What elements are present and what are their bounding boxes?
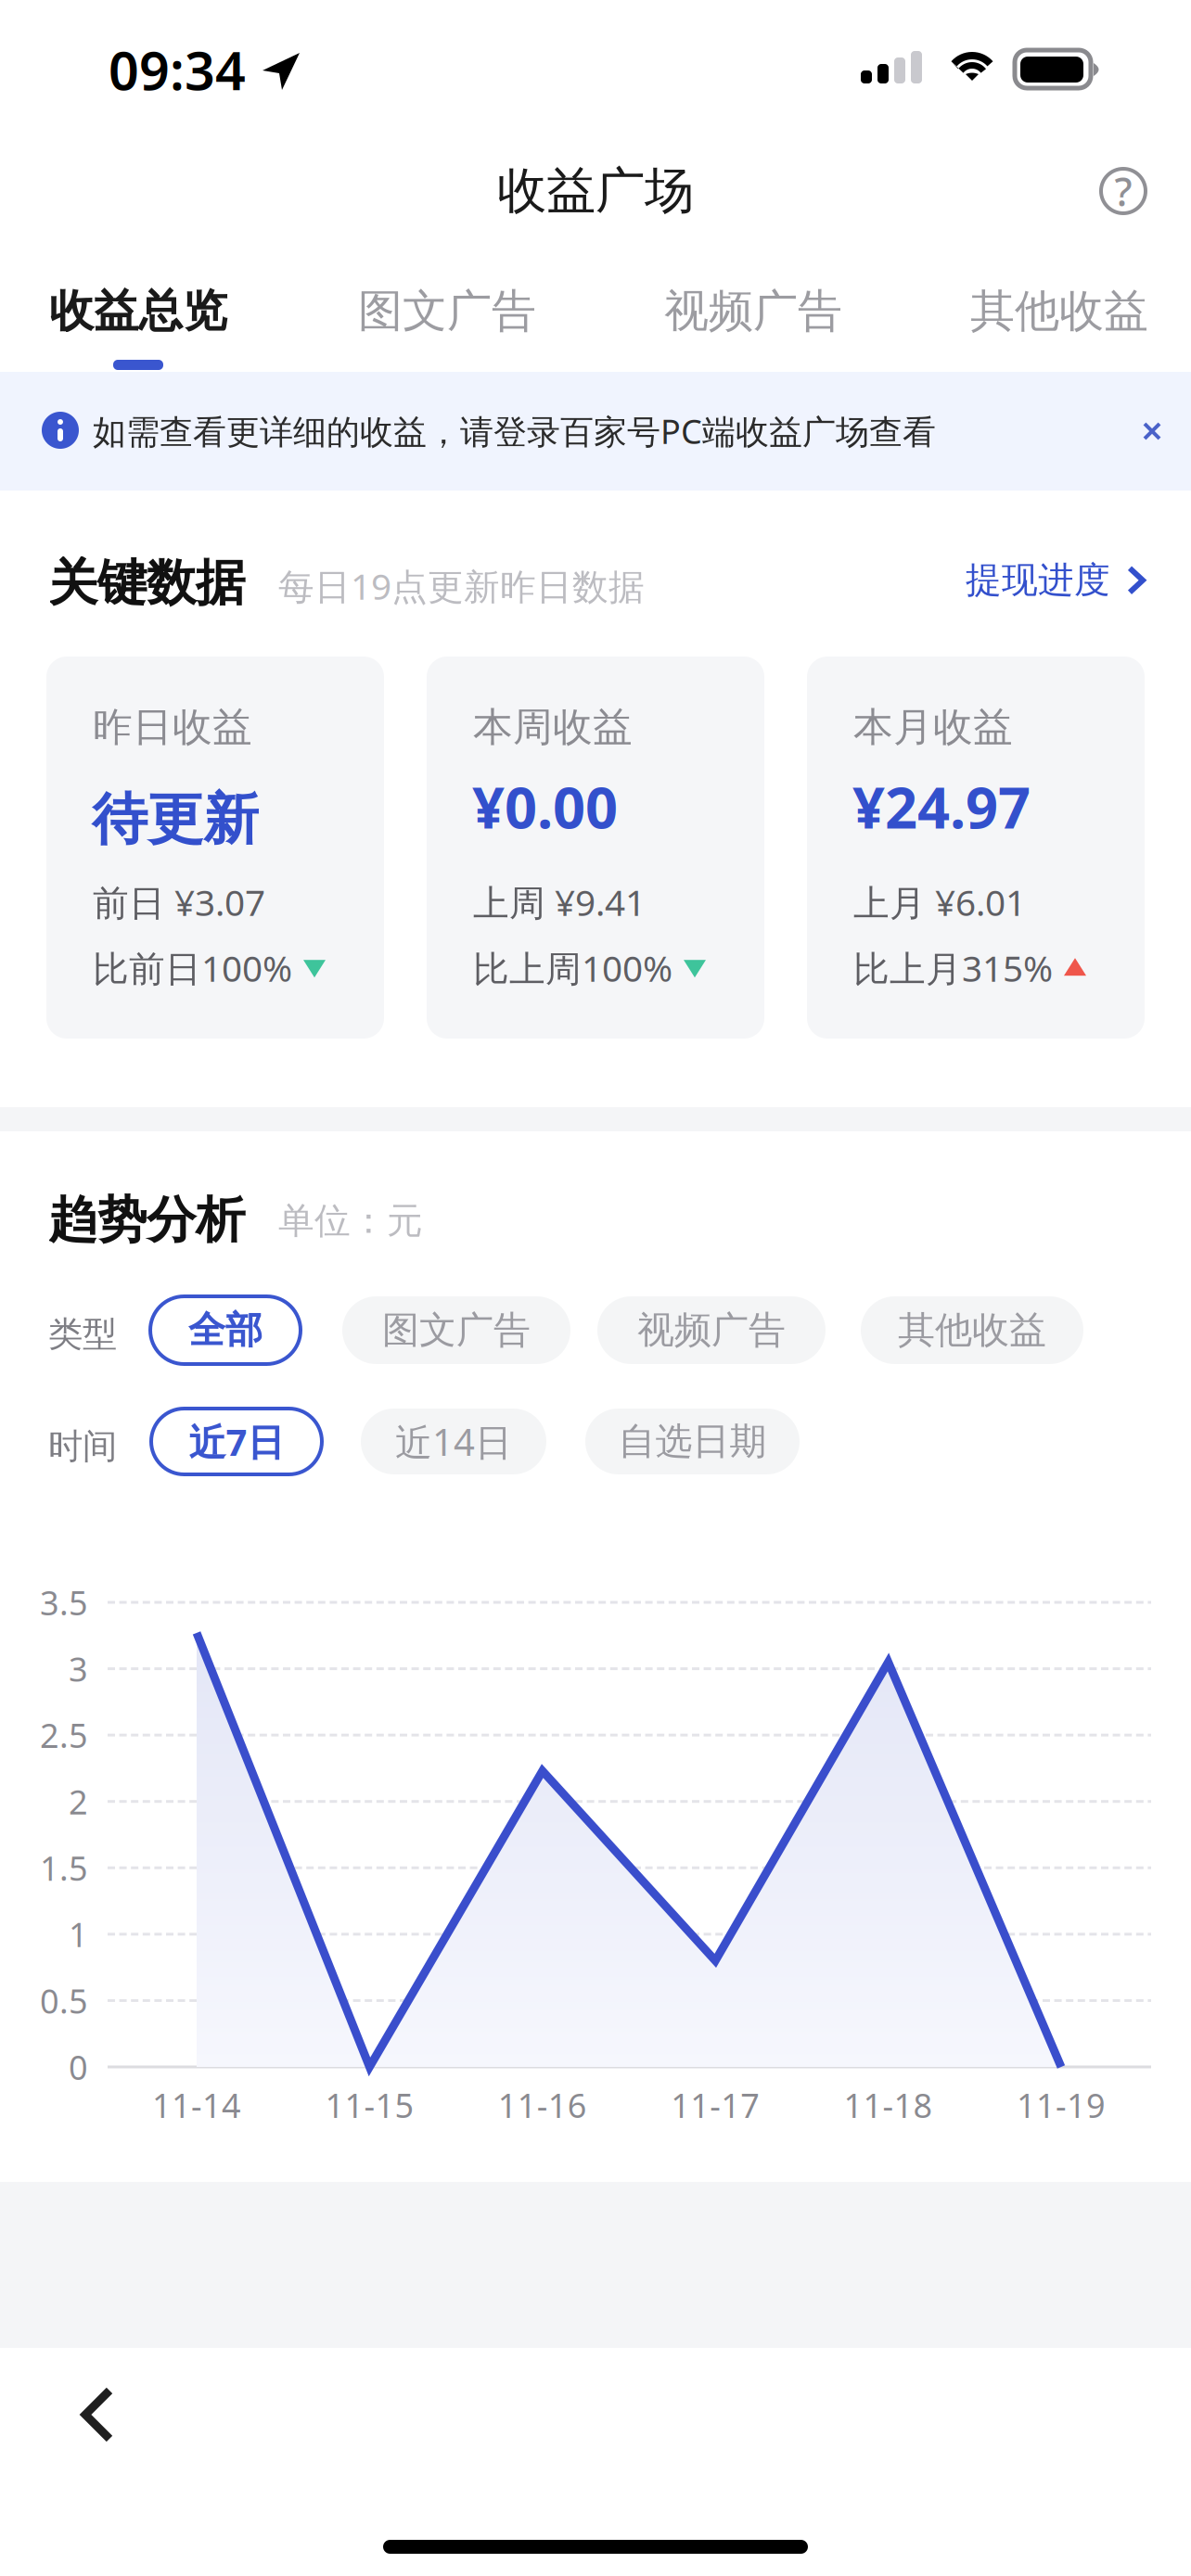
staticText: 类型 <box>48 1313 117 1356</box>
staticText: 比上月315% <box>853 944 1053 992</box>
button[interactable]: 近7日 <box>151 1409 322 1474</box>
staticText: 0 <box>69 2045 88 2089</box>
staticText: 单位：元 <box>278 1199 423 1243</box>
button[interactable]: Back <box>41 2356 154 2473</box>
button[interactable]: 其他收益 <box>861 1296 1083 1364</box>
staticText: 其他收益 <box>898 1307 1046 1353</box>
staticText: 3 <box>69 1647 88 1691</box>
staticText: 提现进度 <box>966 558 1110 602</box>
staticText: 昨日收益 <box>93 703 252 751</box>
staticText: 09:34 <box>109 34 246 105</box>
staticText: 11-19 <box>1017 2083 1106 2127</box>
staticText: 11-16 <box>498 2083 587 2127</box>
staticText: 0.5 <box>40 1978 88 2023</box>
staticText: 本周收益 <box>473 703 633 751</box>
button[interactable]: 图文广告 <box>358 274 553 369</box>
staticText: 其他收益 <box>970 284 1148 338</box>
staticText: 3.5 <box>40 1580 88 1625</box>
button[interactable]: 提现进度 <box>956 545 1156 615</box>
staticText: 11-15 <box>325 2083 414 2127</box>
staticText: ¥0.00 <box>472 769 618 844</box>
staticText: 本月收益 <box>853 703 1013 751</box>
staticText: 时间 <box>48 1425 117 1468</box>
button[interactable]: 全部 <box>150 1296 301 1364</box>
staticText: 近14日 <box>395 1417 512 1466</box>
staticText: 2 <box>69 1779 88 1824</box>
staticText: 图文广告 <box>358 284 536 338</box>
staticText: ? <box>1114 165 1132 217</box>
staticText: ¥24.97 <box>852 769 1031 844</box>
button[interactable]: 近14日 <box>361 1409 546 1474</box>
staticText: 比前日100% <box>93 944 292 992</box>
button[interactable]: 收益总览 <box>49 274 244 369</box>
staticText: 自选日期 <box>618 1419 767 1464</box>
staticText: 11-18 <box>844 2083 933 2127</box>
button[interactable]: 其他收益 <box>970 274 1165 369</box>
staticText: 上月 ¥6.01 <box>853 878 1026 926</box>
staticText: 待更新 <box>92 785 259 854</box>
staticText: 前日 ¥3.07 <box>93 878 265 926</box>
staticText: 11-14 <box>152 2083 241 2127</box>
button[interactable]: Close <box>1115 394 1189 468</box>
button[interactable]: Help <box>1082 149 1165 233</box>
staticText: 图文广告 <box>382 1307 531 1353</box>
staticText: 关键数据 <box>48 553 245 613</box>
button[interactable]: 视频广告 <box>597 1296 826 1364</box>
staticText: 近7日 <box>189 1417 284 1466</box>
staticText: 比上周100% <box>473 944 672 992</box>
staticText: 如需查看更详细的收益，请登录百家号PC端收益广场查看 <box>93 409 936 453</box>
staticText: 2.5 <box>40 1713 88 1757</box>
staticText: 11-17 <box>671 2083 760 2127</box>
staticText: 视频广告 <box>637 1307 786 1353</box>
staticText: 上周 ¥9.41 <box>473 878 646 926</box>
staticText: 收益广场 <box>497 160 694 221</box>
staticText: 趋势分析 <box>48 1190 245 1250</box>
button[interactable]: 自选日期 <box>585 1409 800 1474</box>
staticText: 1.5 <box>40 1846 88 1890</box>
button[interactable]: 图文广告 <box>342 1296 570 1364</box>
staticText: 每日19点更新昨日数据 <box>278 562 645 610</box>
staticText: 收益总览 <box>49 284 227 338</box>
staticText: 全部 <box>188 1307 263 1353</box>
button[interactable]: 视频广告 <box>664 274 859 369</box>
staticText: 1 <box>69 1912 88 1956</box>
staticText: 视频广告 <box>664 284 842 338</box>
